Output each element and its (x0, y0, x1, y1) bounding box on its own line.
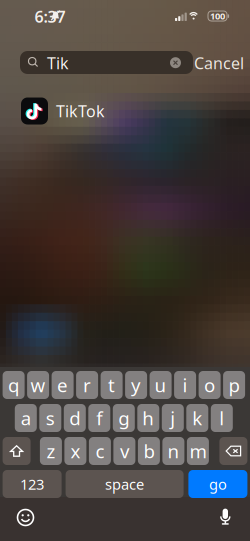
staticText: k (192, 406, 202, 430)
staticText: f (96, 406, 102, 430)
staticText: go (209, 474, 227, 494)
staticText: n (167, 439, 179, 463)
button[interactable]: l (211, 404, 233, 432)
staticText: r (83, 373, 91, 397)
button[interactable]: h (137, 404, 159, 432)
staticText: Cancel (194, 52, 244, 74)
button[interactable]: Emoji (17, 509, 34, 526)
staticText: space (105, 474, 144, 494)
staticText: z (46, 439, 55, 463)
staticText: x (70, 439, 80, 463)
button[interactable]: g (113, 404, 135, 432)
staticText: d (69, 406, 80, 430)
button[interactable]: 123 (3, 470, 62, 498)
staticText: m (189, 439, 206, 463)
button[interactable]: Cancel (199, 53, 239, 73)
button[interactable]: c (89, 437, 111, 465)
staticText: 6:37 (34, 6, 65, 27)
staticText: a (21, 406, 31, 430)
button[interactable]: n (162, 437, 184, 465)
button[interactable]: Delete (219, 437, 247, 465)
staticText: s (46, 406, 55, 430)
staticText: q (8, 373, 19, 397)
button[interactable]: f (88, 404, 110, 432)
staticText: w (31, 373, 46, 397)
button[interactable]: v (113, 437, 135, 465)
button[interactable]: z (40, 437, 62, 465)
button[interactable]: t (101, 371, 123, 399)
staticText: i (183, 373, 188, 397)
staticText: 123 (20, 474, 44, 494)
staticText: o (204, 373, 215, 397)
staticText: c (95, 439, 104, 463)
button[interactable]: k (186, 404, 208, 432)
staticText: 100 (210, 10, 225, 22)
staticText: h (142, 406, 154, 430)
button[interactable]: i (174, 371, 196, 399)
button[interactable]: p (223, 371, 245, 399)
staticText: p (229, 373, 240, 397)
button[interactable]: o (199, 371, 221, 399)
button[interactable]: x (64, 437, 86, 465)
staticText: Tik (47, 52, 69, 74)
button[interactable]: q (3, 371, 25, 399)
button[interactable]: r (76, 371, 98, 399)
button[interactable]: a (15, 404, 37, 432)
staticText: y (131, 373, 141, 397)
button[interactable]: Dictate (217, 508, 234, 526)
button[interactable]: s (39, 404, 61, 432)
staticText: g (118, 406, 129, 430)
staticText: j (170, 406, 175, 430)
button[interactable]: u (150, 371, 172, 399)
button[interactable]: d (64, 404, 86, 432)
staticText: b (143, 439, 154, 463)
button[interactable]: go (188, 470, 247, 498)
button[interactable]: m (187, 437, 209, 465)
staticText: v (120, 439, 129, 463)
button[interactable]: TikTok (0, 89, 250, 133)
button[interactable]: e (52, 371, 74, 399)
button[interactable]: Tik (20, 51, 193, 74)
button[interactable]: space (66, 470, 184, 498)
staticText: t (108, 373, 115, 397)
button[interactable]: j (162, 404, 184, 432)
staticText: u (155, 373, 167, 397)
staticText: TikTok (56, 100, 105, 122)
staticText: e (57, 373, 68, 397)
button[interactable]: w (27, 371, 49, 399)
button[interactable]: b (138, 437, 160, 465)
staticText: l (219, 406, 224, 430)
button[interactable]: y (125, 371, 147, 399)
button[interactable]: Shift (3, 437, 31, 465)
